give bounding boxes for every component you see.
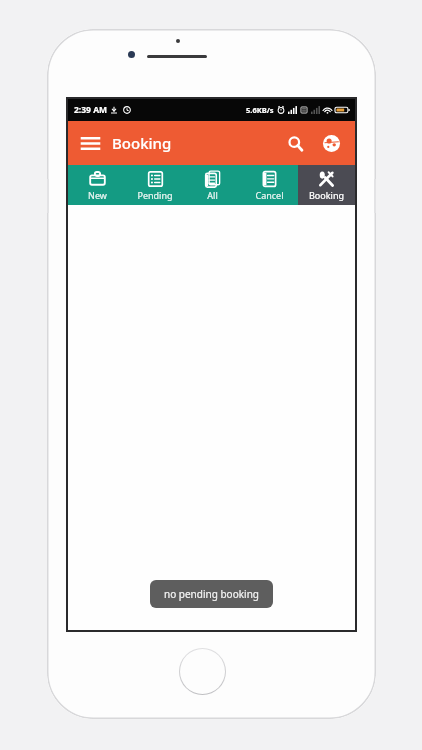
staticText: Cancel xyxy=(255,189,284,201)
staticText: All xyxy=(207,189,218,201)
staticText: 5.6KB/s xyxy=(246,105,274,115)
staticText: Booking xyxy=(309,189,344,201)
staticText: 2:39 AM xyxy=(74,104,108,116)
button[interactable]: Cancel xyxy=(241,165,298,205)
staticText: New xyxy=(88,189,107,201)
staticText: Booking xyxy=(112,133,172,153)
button[interactable]: All xyxy=(184,165,241,205)
button[interactable]: Open navigation menu xyxy=(77,130,103,156)
button[interactable]: Booking xyxy=(298,165,355,205)
button[interactable]: Search xyxy=(280,128,310,158)
button[interactable]: Pending xyxy=(126,165,184,205)
button[interactable]: New xyxy=(68,165,126,205)
staticText: Pending xyxy=(137,189,173,201)
staticText: no pending booking xyxy=(164,587,259,601)
button[interactable]: Language xyxy=(316,128,346,158)
